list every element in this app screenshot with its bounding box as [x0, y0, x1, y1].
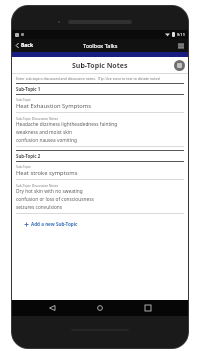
button[interactable]: Heat stroke symptoms [16, 169, 184, 180]
button[interactable]: Info [174, 60, 185, 71]
button[interactable]: Back [12, 40, 39, 51]
staticText: Headache dizziness lightheadedness faint… [16, 121, 118, 128]
staticText: Sub-Topic Discussion Notes [16, 183, 59, 187]
staticText: Sub-Topic Notes [72, 61, 128, 71]
staticText: Enter sub-topics discussed and discussio… [16, 76, 161, 81]
staticText: Sub-Topic [16, 97, 31, 101]
staticText: Sub-Topic 1 [16, 86, 41, 92]
button[interactable]: Dry hot skin with no sweating [16, 188, 184, 214]
button[interactable]: Add a new Sub-Topic [22, 219, 80, 229]
staticText: Add a new Sub-Topic [31, 221, 78, 227]
staticText: Sub-Topic 2 [16, 153, 41, 159]
staticText: seizures convulsions [16, 204, 63, 211]
staticText: Heat Exhaustion Symptoms [16, 102, 92, 110]
button[interactable]: Home [92, 300, 108, 316]
staticText: confusion nausea vomiting [16, 137, 77, 144]
staticText: weakness and moist skin [16, 129, 73, 136]
button[interactable]: Menu [174, 40, 188, 52]
staticText: Sub-Topic Discussion Notes [16, 116, 59, 120]
button[interactable]: Headache dizziness lightheadedness faint… [16, 121, 184, 147]
staticText: Toolbox Talks [83, 42, 118, 49]
staticText: Dry hot skin with no sweating [16, 188, 83, 195]
staticText: confusion or loss of consciousness [16, 196, 94, 203]
button[interactable]: Back [44, 300, 60, 316]
staticText: Back [21, 42, 34, 49]
button[interactable]: Heat Exhaustion Symptoms [16, 102, 184, 113]
staticText: Heat stroke symptoms [16, 169, 78, 177]
button[interactable]: Recents [140, 300, 156, 316]
staticText: Sub-Topic [16, 164, 31, 168]
staticText: 9:11 [177, 32, 185, 37]
